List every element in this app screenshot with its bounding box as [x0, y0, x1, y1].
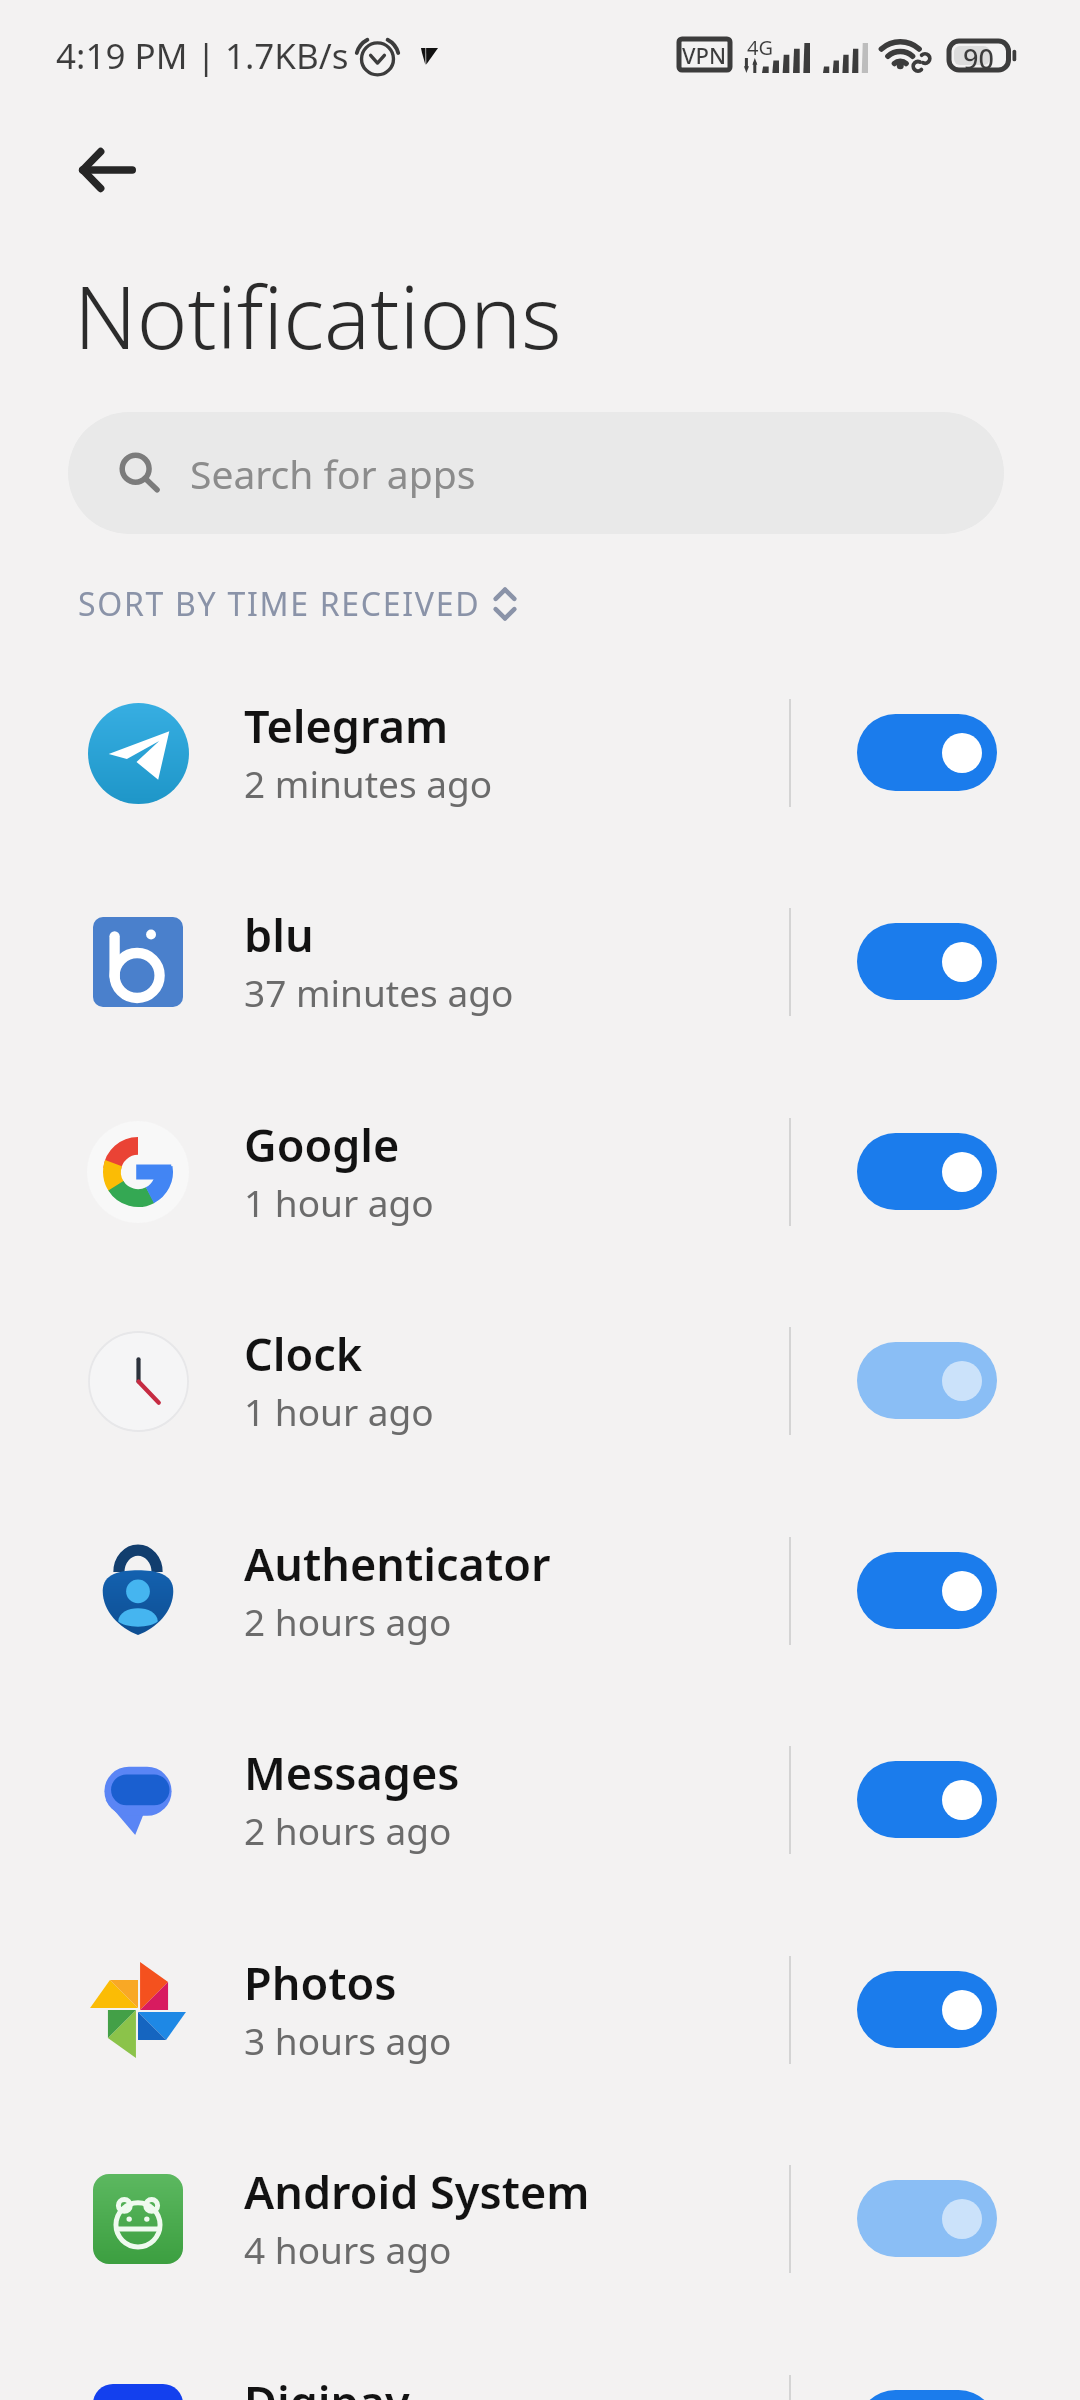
button[interactable]: Notifications off [857, 1342, 997, 1419]
staticText: Clock [244, 1323, 363, 1384]
staticText: 2 minutes ago [244, 758, 493, 808]
staticText: 4:19 PM | 1.7KB/s [56, 32, 349, 80]
button[interactable]: Notifications off [857, 2180, 997, 2257]
staticText: 2 hours ago [244, 1805, 452, 1855]
staticText: Messages [244, 1742, 460, 1803]
button[interactable]: Search for apps [68, 412, 1004, 534]
staticText: blu [244, 904, 314, 965]
button[interactable]: SORT BY TIME RECEIVED [78, 580, 518, 628]
staticText: Photos [244, 1952, 397, 2013]
button[interactable]: Authenticator [0, 1494, 1080, 1687]
button[interactable]: Notifications on [857, 923, 997, 1000]
button[interactable]: Notifications on [857, 1133, 997, 1210]
staticText: VPN [682, 40, 727, 70]
button[interactable]: blu [0, 865, 1080, 1058]
button[interactable]: Notifications on [857, 1761, 997, 1838]
button[interactable]: Notifications on [857, 1971, 997, 2048]
staticText: 2 hours ago [244, 1596, 452, 1646]
staticText: 1 hour ago [244, 1386, 434, 1436]
staticText: Digipay [244, 2371, 410, 2400]
staticText: Telegram [244, 695, 449, 756]
staticText: Android System [244, 2161, 590, 2222]
staticText: 90 [963, 40, 994, 69]
staticText: Notifications [74, 257, 562, 374]
button[interactable]: Back [61, 124, 153, 216]
staticText: SORT BY TIME RECEIVED [78, 582, 481, 626]
staticText: 4G [747, 34, 773, 61]
button[interactable]: Android System [0, 2122, 1080, 2315]
button[interactable]: Photos [0, 1913, 1080, 2106]
staticText: Google [244, 1114, 400, 1175]
button[interactable]: Google [0, 1075, 1080, 1268]
staticText: Authenticator [244, 1533, 551, 1594]
staticText: Search for apps [190, 447, 476, 500]
button[interactable]: Digipay [0, 2332, 1080, 2400]
button[interactable]: Clock [0, 1284, 1080, 1477]
button[interactable]: Notifications on [857, 714, 997, 791]
staticText: 4 hours ago [244, 2224, 452, 2274]
staticText: 3 hours ago [244, 2015, 452, 2065]
button[interactable]: Notifications on [857, 2390, 997, 2400]
staticText: 1 hour ago [244, 1177, 434, 1227]
button[interactable]: Notifications on [857, 1552, 997, 1629]
button[interactable]: Messages [0, 1703, 1080, 1896]
staticText: 37 minutes ago [244, 967, 514, 1017]
button[interactable]: Telegram [0, 656, 1080, 849]
